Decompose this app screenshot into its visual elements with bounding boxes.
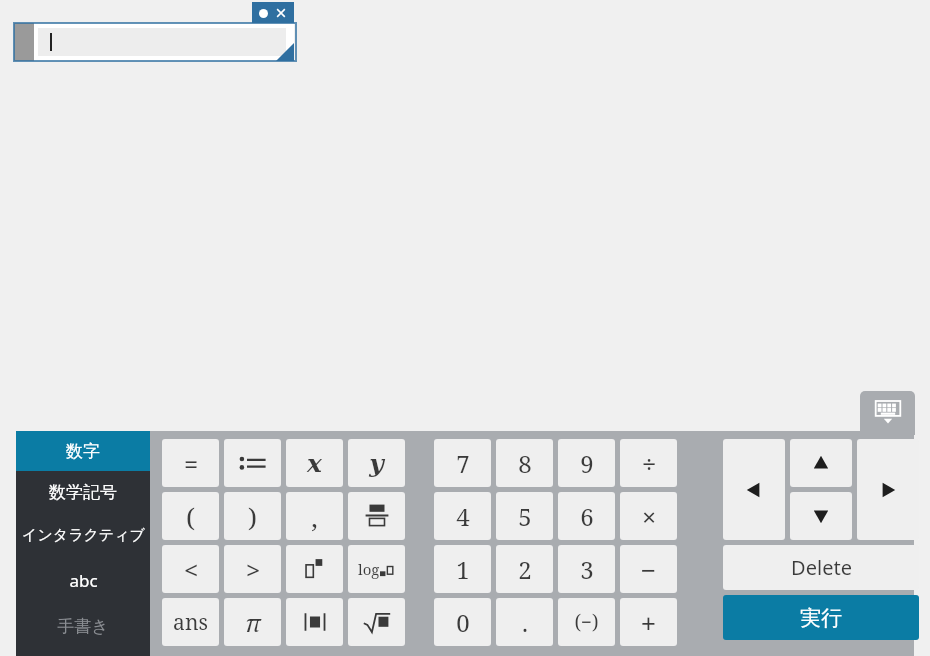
button[interactable]: Up (790, 439, 852, 487)
staticText: Delete (791, 554, 852, 581)
button[interactable]: 𝒙 (286, 439, 343, 487)
staticText: ans (173, 608, 208, 637)
button[interactable]: インタラクティブ (16, 513, 150, 557)
button[interactable]: (−) (558, 598, 615, 646)
staticText: 8 (518, 447, 532, 480)
button[interactable]: Power (286, 545, 343, 593)
button[interactable]: Assign (224, 439, 281, 487)
button[interactable]: 6 (558, 492, 615, 540)
staticText: 数字 (66, 441, 100, 462)
staticText: 3 (580, 553, 594, 586)
button[interactable]: Square root (348, 598, 405, 646)
staticText: 4 (456, 500, 470, 533)
staticText: log (358, 559, 380, 579)
staticText: 1 (456, 553, 470, 586)
button[interactable]: . (496, 598, 553, 646)
button[interactable]: < (162, 545, 219, 593)
button[interactable]: ) (224, 492, 281, 540)
staticText: 𝒚 (369, 449, 384, 478)
staticText: ) (248, 499, 257, 534)
button[interactable]: + (620, 598, 677, 646)
button[interactable]: Minimize (259, 9, 268, 18)
button[interactable]: 7 (434, 439, 491, 487)
button[interactable]: Fraction (348, 492, 405, 540)
staticText: < (184, 553, 198, 586)
button[interactable]: 2 (496, 545, 553, 593)
button[interactable]: Right (857, 439, 919, 540)
staticText: . (522, 606, 528, 639)
button[interactable]: 3 (558, 545, 615, 593)
staticText: 9 (580, 447, 594, 480)
staticText: 実行 (800, 605, 842, 631)
staticText: + (641, 605, 656, 640)
staticText: 6 (580, 500, 594, 533)
staticText: 𝒙 (307, 449, 322, 478)
button[interactable]: Down (790, 492, 852, 540)
staticText: 5 (518, 500, 532, 533)
button[interactable]: 5 (496, 492, 553, 540)
staticText: 2 (518, 553, 532, 586)
button[interactable]: Left (723, 439, 785, 540)
staticText: > (246, 553, 260, 586)
button[interactable]: π (224, 598, 281, 646)
button[interactable]: 4 (434, 492, 491, 540)
button[interactable]: , (286, 492, 343, 540)
button[interactable]: 1 (434, 545, 491, 593)
staticText: 手書き (57, 616, 109, 637)
staticText: インタラクティブ (22, 526, 145, 545)
staticText: 0 (456, 606, 470, 639)
button[interactable]: 実行 (723, 595, 919, 640)
button[interactable]: 𝒚 (348, 439, 405, 487)
button[interactable]: 9 (558, 439, 615, 487)
button[interactable]: Absolute value (286, 598, 343, 646)
button[interactable]: 手書き (16, 603, 150, 649)
button[interactable]: 0 (434, 598, 491, 646)
button[interactable]: ÷ (620, 439, 677, 487)
button[interactable]: Logarithm (348, 545, 405, 593)
staticText: , (311, 499, 318, 534)
button[interactable]: Hide keyboard (860, 391, 915, 435)
button[interactable]: 数字 (16, 431, 150, 471)
staticText: = (184, 447, 198, 480)
button[interactable] (38, 28, 286, 56)
staticText: ( (186, 499, 195, 534)
staticText: ÷ (642, 447, 656, 480)
button[interactable]: = (162, 439, 219, 487)
staticText: − (641, 552, 656, 587)
staticText: 数学記号 (49, 482, 117, 503)
button[interactable]: abc (16, 557, 150, 603)
button[interactable]: × (620, 492, 677, 540)
button[interactable]: > (224, 545, 281, 593)
staticText: π (245, 606, 261, 639)
button[interactable]: Delete (723, 545, 919, 590)
staticText: 7 (456, 447, 470, 480)
staticText: × (642, 500, 656, 533)
button[interactable]: 8 (496, 439, 553, 487)
button[interactable]: Close (275, 7, 287, 19)
staticText: abc (69, 569, 98, 592)
button[interactable]: − (620, 545, 677, 593)
button[interactable]: ans (162, 598, 219, 646)
button[interactable]: 数学記号 (16, 471, 150, 513)
button[interactable]: ( (162, 492, 219, 540)
button[interactable]: Move (14, 23, 34, 61)
staticText: (−) (574, 609, 599, 635)
